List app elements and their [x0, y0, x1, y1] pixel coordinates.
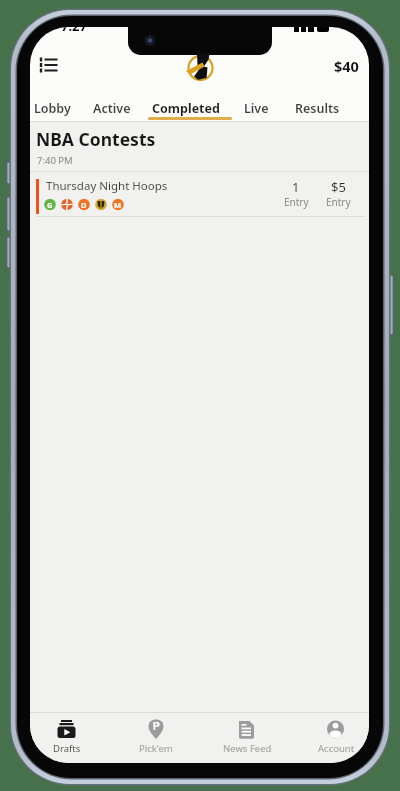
button[interactable]: News Feed — [213, 713, 281, 761]
staticText: 7:27 — [61, 27, 87, 35]
staticText: Pick'em — [139, 742, 173, 755]
button[interactable]: Thursday Night Hoops — [30, 171, 369, 216]
staticText: Live — [244, 100, 269, 117]
button[interactable]: Account — [302, 713, 369, 761]
button[interactable]: Lobby — [30, 95, 102, 121]
staticText: $40 — [334, 56, 359, 76]
staticText: 7:40 PM — [37, 154, 73, 167]
button[interactable]: $40 — [323, 52, 359, 80]
staticText: Entry — [284, 195, 309, 209]
staticText: News Feed — [223, 742, 272, 755]
button[interactable] — [32, 51, 72, 91]
staticText: Thursday Night Hoops — [46, 178, 168, 194]
button[interactable]: Live — [206, 95, 306, 121]
staticText: NBA Contests — [36, 127, 156, 151]
button[interactable]: Active — [62, 95, 162, 121]
staticText: Results — [295, 100, 340, 117]
staticText: Entry — [326, 195, 351, 209]
button[interactable]: Drafts — [33, 713, 101, 761]
staticText: 1 — [292, 178, 300, 196]
button[interactable]: Completed — [136, 95, 236, 121]
button[interactable]: Results — [267, 95, 367, 121]
button[interactable]: Pick'em — [122, 713, 190, 761]
staticText: Lobby — [34, 100, 71, 117]
staticText: D — [81, 200, 87, 210]
staticText: Drafts — [53, 742, 81, 755]
staticText: Completed — [152, 100, 220, 117]
staticText: Active — [93, 100, 131, 117]
staticText: $5 — [331, 178, 346, 196]
staticText: M — [114, 200, 122, 210]
staticText: Account — [318, 742, 355, 755]
staticText: G — [47, 200, 53, 210]
